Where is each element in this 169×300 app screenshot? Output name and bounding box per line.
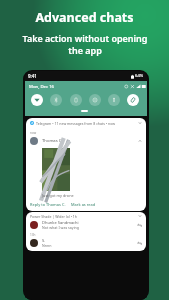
button[interactable]: Battery saver: [70, 94, 82, 106]
button[interactable]: Do not disturb: [89, 94, 101, 106]
button[interactable]: Bluetooth: [50, 94, 62, 106]
staticText: Take action without opening the app: [22, 32, 148, 57]
staticText: Not what I was saying: [42, 225, 80, 230]
staticText: now: [30, 131, 37, 135]
button[interactable]: Flashlight: [108, 94, 120, 106]
staticText: Thomas C.: [42, 138, 63, 144]
button[interactable]: Telegram • 11 new messages from 8 chats …: [26, 118, 146, 211]
button[interactable]: Auto-rotate: [127, 94, 139, 106]
staticText: S.: [42, 238, 46, 243]
button[interactable]: Wi-Fi: [31, 94, 43, 106]
staticText: Nnnn: [42, 243, 52, 248]
staticText: Mon, Dec 16: [29, 83, 55, 89]
staticText: 64%: [135, 73, 144, 79]
staticText: Telegram • 11 new messages from 8 chats …: [36, 121, 116, 126]
staticText: Power Shade | Wider lol • 1h: [30, 214, 78, 219]
staticText: Dhunke Sandmachi: [42, 220, 79, 225]
staticText: 13h: [30, 233, 36, 237]
button[interactable]: Mark as read: [71, 202, 96, 207]
staticText: Just got my drone: [42, 193, 74, 198]
staticText: Advanced chats: [35, 9, 134, 26]
button[interactable]: Reply to Thomas C.: [30, 202, 66, 207]
staticText: 9:41: [28, 73, 37, 79]
button[interactable]: Power Shade | Wider lol • 1h: [26, 212, 146, 251]
